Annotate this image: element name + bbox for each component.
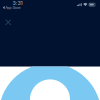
button[interactable]: App Store	[3, 5, 20, 10]
staticText: 3:31	[12, 0, 22, 6]
staticText: App Store	[5, 5, 20, 10]
button[interactable]: Close	[2, 16, 15, 29]
